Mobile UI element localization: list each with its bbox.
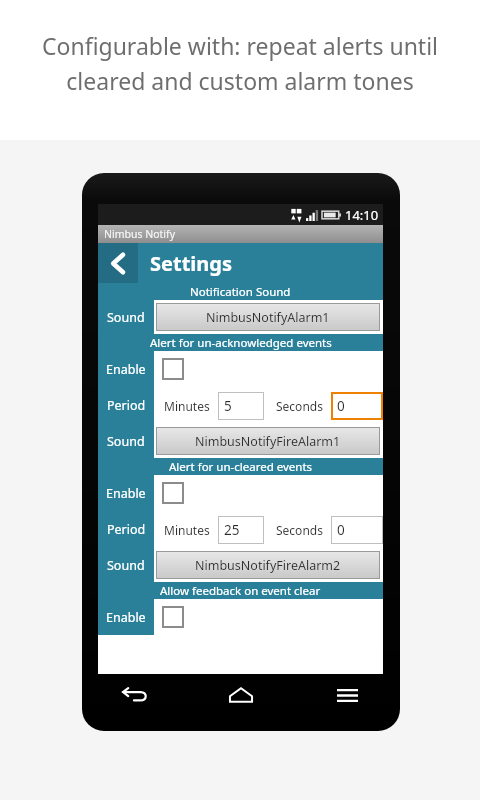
staticText: Seconds xyxy=(276,522,323,538)
staticText: Sound xyxy=(107,557,145,574)
button[interactable]: 25 xyxy=(218,516,264,544)
button[interactable]: 0 xyxy=(331,392,383,420)
staticText: 0 xyxy=(337,397,345,415)
staticText: 14:10 xyxy=(345,206,379,224)
staticText: Minutes xyxy=(164,522,210,538)
staticText: Sound xyxy=(107,309,145,326)
button[interactable]: NimbusNotifyAlarm1 xyxy=(156,303,380,331)
staticText: 25 xyxy=(224,521,240,539)
staticText: Settings xyxy=(150,250,232,277)
button[interactable]: 0 xyxy=(331,516,383,544)
button[interactable]: Menu xyxy=(294,674,400,716)
staticText: NimbusNotifyAlarm1 xyxy=(206,309,330,326)
staticText: Seconds xyxy=(276,398,323,414)
staticText: Notification Sound xyxy=(190,284,291,300)
button[interactable]: NimbusNotifyFireAlarm1 xyxy=(156,427,380,455)
staticText: Minutes xyxy=(164,398,210,414)
staticText: Period xyxy=(107,397,146,414)
staticText: Allow feedback on event clear xyxy=(160,583,321,599)
staticText: Alert for un-cleared events xyxy=(169,459,313,475)
staticText: Enable xyxy=(106,609,146,626)
staticText: Period xyxy=(107,521,146,538)
staticText: 0 xyxy=(337,521,345,539)
staticText: NimbusNotifyFireAlarm1 xyxy=(195,433,341,450)
staticText: Alert for un-acknowledged events xyxy=(150,335,332,351)
button[interactable]: Enable xyxy=(162,482,184,504)
button[interactable]: Back xyxy=(98,243,138,283)
button[interactable]: Back xyxy=(82,674,188,716)
staticText: Sound xyxy=(107,433,145,450)
button[interactable]: NimbusNotifyFireAlarm2 xyxy=(156,551,380,579)
staticText: 5 xyxy=(224,397,232,415)
staticText: cleared and custom alarm tones xyxy=(0,65,480,96)
staticText: Configurable with: repeat alerts until xyxy=(0,30,480,61)
button[interactable]: Enable xyxy=(162,606,184,628)
button[interactable]: Home xyxy=(188,674,294,716)
button[interactable]: Enable xyxy=(162,358,184,380)
staticText: Enable xyxy=(106,485,146,502)
staticText: Enable xyxy=(106,361,146,378)
staticText: Nimbus Notify xyxy=(104,227,176,241)
button[interactable]: 5 xyxy=(218,392,264,420)
staticText: NimbusNotifyFireAlarm2 xyxy=(195,557,341,574)
